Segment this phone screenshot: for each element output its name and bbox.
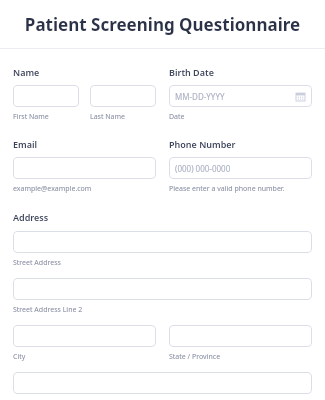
staticText: State / Province xyxy=(169,352,221,362)
staticText: Patient Screening Questionnaire xyxy=(0,13,325,36)
button[interactable] xyxy=(169,325,312,347)
staticText: Email xyxy=(13,138,38,150)
staticText: example@example.com xyxy=(13,184,92,194)
staticText: Street Address xyxy=(13,258,61,268)
button[interactable] xyxy=(13,85,79,107)
staticText: Phone Number xyxy=(169,138,236,150)
button[interactable] xyxy=(13,157,156,179)
other: Pick date xyxy=(296,92,305,101)
button[interactable] xyxy=(13,278,312,300)
button[interactable] xyxy=(13,231,312,253)
staticText: Please enter a valid phone number. xyxy=(169,184,285,194)
staticText: Last Name xyxy=(90,112,156,122)
staticText: MM-DD-YYYY xyxy=(175,91,225,102)
staticText: Address xyxy=(13,211,49,223)
button[interactable] xyxy=(13,372,312,394)
staticText: Name xyxy=(13,66,40,78)
button[interactable]: MM-DD-YYYY xyxy=(169,85,312,107)
staticText: Street Address Line 2 xyxy=(13,305,83,315)
staticText: City xyxy=(13,352,26,362)
staticText: First Name xyxy=(13,112,79,122)
staticText: Date xyxy=(169,112,185,122)
button[interactable]: (000) 000-0000 xyxy=(169,157,312,179)
button[interactable] xyxy=(13,325,156,347)
staticText: Birth Date xyxy=(169,66,214,78)
staticText: (000) 000-0000 xyxy=(175,163,231,174)
button[interactable] xyxy=(90,85,156,107)
